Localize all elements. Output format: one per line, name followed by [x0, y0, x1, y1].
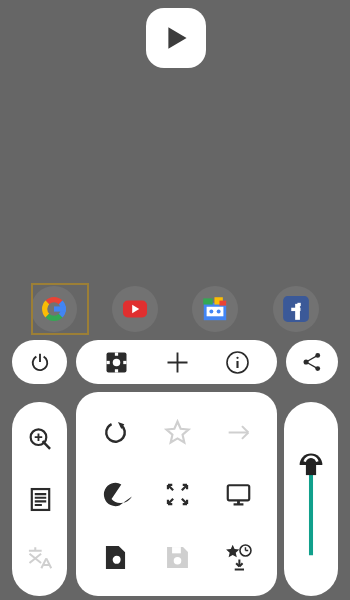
button[interactable]: Settings: [96, 342, 136, 382]
button[interactable]: Brightness: [284, 402, 338, 596]
button[interactable]: Play: [146, 8, 206, 68]
button[interactable]: Forward: [215, 409, 261, 455]
button[interactable]: Info: [217, 342, 257, 382]
button[interactable]: Reader mode: [17, 476, 63, 522]
button[interactable]: Share: [286, 340, 338, 384]
button[interactable]: Power: [12, 340, 67, 384]
button[interactable]: Reload: [92, 409, 138, 455]
button[interactable]: Translate: [17, 536, 63, 582]
button[interactable]: Bookmark: [154, 409, 200, 455]
button[interactable]: Save page: [154, 534, 200, 580]
button[interactable]: Save offline: [215, 534, 261, 580]
button[interactable]: Full screen: [154, 471, 200, 517]
button[interactable]: Zoom in: [17, 416, 63, 462]
button[interactable]: Find in page: [92, 534, 138, 580]
button[interactable]: Desktop site: [215, 471, 261, 517]
button[interactable]: Add: [157, 342, 197, 382]
button[interactable]: Night mode: [92, 471, 138, 517]
